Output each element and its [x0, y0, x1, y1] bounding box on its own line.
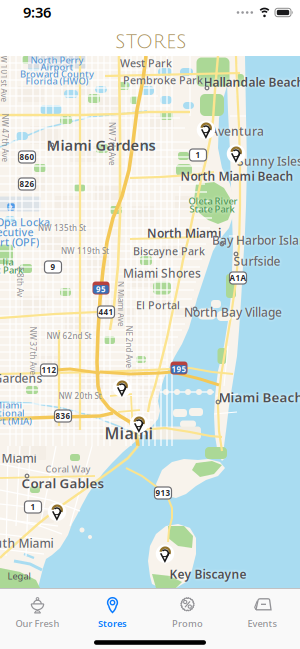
staticText: 441: [98, 307, 113, 317]
staticText: 95: [96, 284, 106, 294]
staticText: Miami: [0, 399, 22, 411]
staticText: Biscayne Park: [133, 244, 205, 258]
button[interactable]: Store location: [155, 545, 175, 565]
staticText: Promo: [172, 617, 203, 630]
staticText: Miami Beach: [218, 388, 300, 406]
staticText: t Park: [0, 264, 23, 276]
staticText: E 8th Av: [5, 277, 35, 287]
staticText: State Park: [189, 203, 234, 215]
staticText: Events: [247, 617, 277, 630]
staticText: Airport: [40, 61, 73, 73]
staticText: 826: [19, 179, 34, 189]
button[interactable]: Store location: [129, 415, 149, 435]
staticText: Miami Gardens: [46, 135, 155, 155]
staticText: Miami Shores: [123, 265, 201, 281]
staticText: NW 47th Ave: [0, 133, 29, 143]
button[interactable]: Store location: [196, 121, 216, 141]
staticText: lia: [2, 256, 13, 268]
staticText: NW 20th St: [58, 391, 101, 401]
staticText: NW 7th Ave: [90, 139, 134, 149]
staticText: NE 2nd Ave: [107, 342, 150, 352]
button[interactable]: Our Fresh: [0, 590, 75, 634]
staticText: Stores: [98, 617, 127, 630]
button[interactable]: Promo: [150, 590, 225, 634]
staticText: 112: [41, 365, 56, 375]
staticText: port (MIA): [0, 415, 32, 427]
staticText: Sunny Isles: [237, 153, 300, 169]
staticText: Broward County: [20, 68, 94, 80]
staticText: Miami: [104, 422, 153, 444]
staticText: Our Fresh: [15, 617, 59, 630]
staticText: Florida (HWO): [25, 75, 88, 87]
button[interactable]: Store location: [47, 503, 67, 523]
staticText: 9:36: [23, 2, 51, 22]
staticText: 1: [30, 502, 35, 512]
staticText: North Miami: [147, 225, 221, 241]
staticText: Coral Way: [45, 463, 90, 475]
staticText: NW 101st Ave: [0, 71, 30, 81]
staticText: Legal: [7, 570, 30, 582]
staticText: North Miami Beach: [180, 168, 293, 184]
staticText: Coral Gables: [21, 474, 104, 492]
staticText: El Portal: [136, 298, 180, 312]
button[interactable]: Store location: [112, 379, 132, 399]
staticText: Aventura: [210, 123, 264, 139]
staticText: Hallandale Beach: [203, 74, 300, 90]
staticText: NW 135th St: [38, 223, 86, 233]
staticText: NW 119th St: [61, 246, 109, 256]
staticText: 195: [171, 364, 186, 374]
button[interactable]: Store location: [226, 145, 246, 165]
staticText: uth Miami: [0, 535, 53, 551]
staticText: 836: [55, 411, 70, 421]
button[interactable]: Stores: [75, 590, 150, 634]
button[interactable]: Events: [225, 590, 300, 634]
staticText: NW 37th Ave: [8, 346, 57, 356]
staticText: ort (OPF): [0, 235, 39, 249]
staticText: Gardens: [0, 370, 42, 386]
staticText: 9: [50, 262, 55, 272]
staticText: ✈: [8, 203, 14, 211]
staticText: 913: [155, 488, 170, 498]
staticText: West Park: [120, 56, 172, 70]
staticText: Key Biscayne: [169, 566, 246, 582]
staticText: North Perry: [30, 54, 83, 66]
staticText: t Miami: [0, 450, 36, 466]
staticText: N Miami Ave: [98, 299, 144, 309]
button[interactable]: Legal: [7, 571, 31, 581]
staticText: 1: [195, 150, 200, 160]
staticText: NW 62nd St: [46, 331, 91, 341]
staticText: Bay Harbor Islands: [212, 232, 300, 248]
staticText: Surfside: [233, 253, 280, 269]
staticText: xecutive: [0, 225, 33, 239]
staticText: national: [0, 407, 25, 419]
staticText: North Bay Village: [184, 304, 282, 320]
staticText: i-Opa Locka: [0, 215, 50, 229]
staticText: Pembroke Park: [123, 73, 203, 87]
staticText: STORES: [115, 31, 187, 53]
staticText: Oleta River: [188, 195, 237, 207]
staticText: 860: [19, 152, 34, 162]
staticText: A1A: [229, 273, 246, 283]
